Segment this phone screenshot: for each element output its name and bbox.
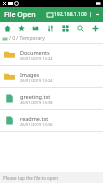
button[interactable]: Add	[88, 22, 103, 34]
staticText: |	[89, 11, 92, 18]
staticText: Documents	[20, 49, 50, 56]
button[interactable]: Storage	[28, 22, 43, 34]
button[interactable]: Documents	[0, 44, 103, 66]
other: More	[95, 12, 100, 17]
staticText: Please tap the file to open	[3, 175, 58, 181]
button[interactable]: Grid view	[58, 22, 73, 34]
staticText: 26/01/2019 13:24	[20, 78, 53, 83]
button[interactable]: Home	[0, 22, 14, 34]
staticText: 26/01/2019 13:36	[20, 122, 53, 127]
button[interactable]: Sort	[43, 22, 58, 34]
button[interactable]: Images	[0, 66, 103, 88]
staticText: readme.txt	[20, 115, 49, 122]
button[interactable]: greeting.txt	[0, 88, 103, 110]
staticText: greeting.txt	[20, 93, 51, 100]
staticText: 192.168.1.100	[54, 11, 87, 18]
staticText: 26/01/2019 13:24	[20, 56, 53, 61]
staticText: File Open	[4, 10, 36, 20]
button[interactable]: Favorites	[14, 22, 28, 34]
button[interactable]: readme.txt	[0, 110, 103, 132]
staticText: 26/01/2019 13:38	[20, 100, 53, 105]
staticText: Images	[20, 71, 40, 78]
staticText: / 0 / Temporary	[9, 35, 45, 42]
button[interactable]: Search	[73, 22, 88, 34]
